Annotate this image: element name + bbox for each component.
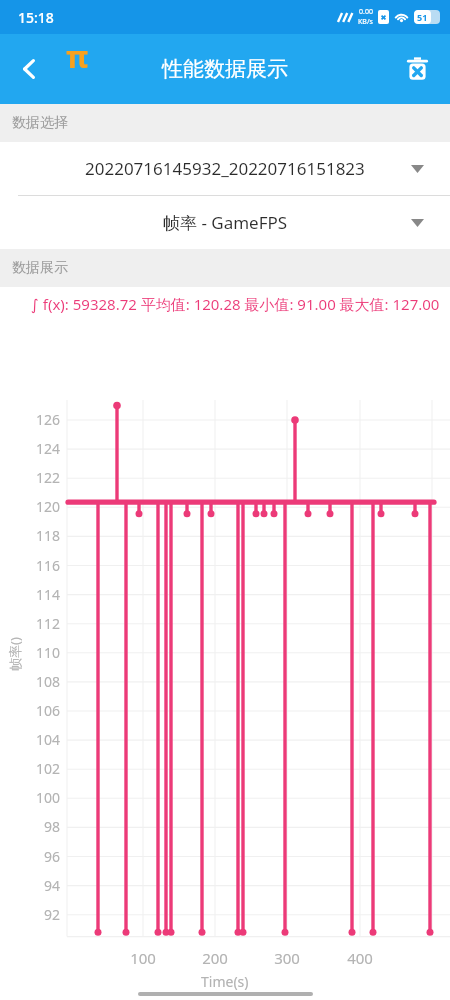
staticText: 126 bbox=[24, 410, 60, 429]
staticText: 15:18 bbox=[18, 8, 54, 27]
staticText: 120 bbox=[24, 497, 60, 516]
staticText: 200 bbox=[193, 948, 237, 968]
staticText: ∫ f(x): 59328.72 平均值: 120.28 最小值: 91.00 … bbox=[31, 294, 446, 314]
staticText: KB/s bbox=[358, 17, 373, 27]
staticText: 118 bbox=[24, 526, 60, 545]
staticText: 92 bbox=[24, 905, 60, 924]
staticText: 400 bbox=[338, 948, 382, 968]
staticText: 124 bbox=[24, 439, 60, 458]
staticText: 122 bbox=[24, 468, 60, 487]
staticText: 112 bbox=[24, 614, 60, 633]
button[interactable]: 20220716145932_20220716151823 bbox=[0, 142, 450, 195]
staticText: 51 bbox=[417, 11, 428, 23]
staticText: 100 bbox=[121, 948, 165, 968]
staticText: 数据选择 bbox=[12, 114, 68, 132]
staticText: 20220716145932_20220716151823 bbox=[85, 157, 365, 180]
staticText: 100 bbox=[24, 788, 60, 807]
staticText: 104 bbox=[24, 730, 60, 749]
staticText: 数据展示 bbox=[12, 259, 68, 277]
staticText: 0.00 bbox=[359, 7, 373, 17]
staticText: 116 bbox=[24, 556, 60, 575]
button[interactable]: Delete bbox=[393, 45, 441, 93]
staticText: 300 bbox=[265, 948, 309, 968]
staticText: 102 bbox=[24, 759, 60, 778]
staticText: 性能数据展示 bbox=[162, 56, 288, 82]
staticText: 108 bbox=[24, 672, 60, 691]
staticText: 110 bbox=[24, 643, 60, 662]
staticText: 106 bbox=[24, 701, 60, 720]
button[interactable]: 帧率 - GameFPS bbox=[0, 196, 450, 249]
staticText: 帧率 - GameFPS bbox=[163, 211, 288, 234]
staticText: 96 bbox=[24, 847, 60, 866]
staticText: 帧率() bbox=[6, 637, 24, 671]
button[interactable]: Back bbox=[0, 40, 58, 98]
staticText: 114 bbox=[24, 585, 60, 604]
staticText: Time(s) bbox=[201, 972, 249, 991]
staticText: π bbox=[66, 36, 89, 77]
staticText: 98 bbox=[24, 817, 60, 836]
staticText: 94 bbox=[24, 876, 60, 895]
